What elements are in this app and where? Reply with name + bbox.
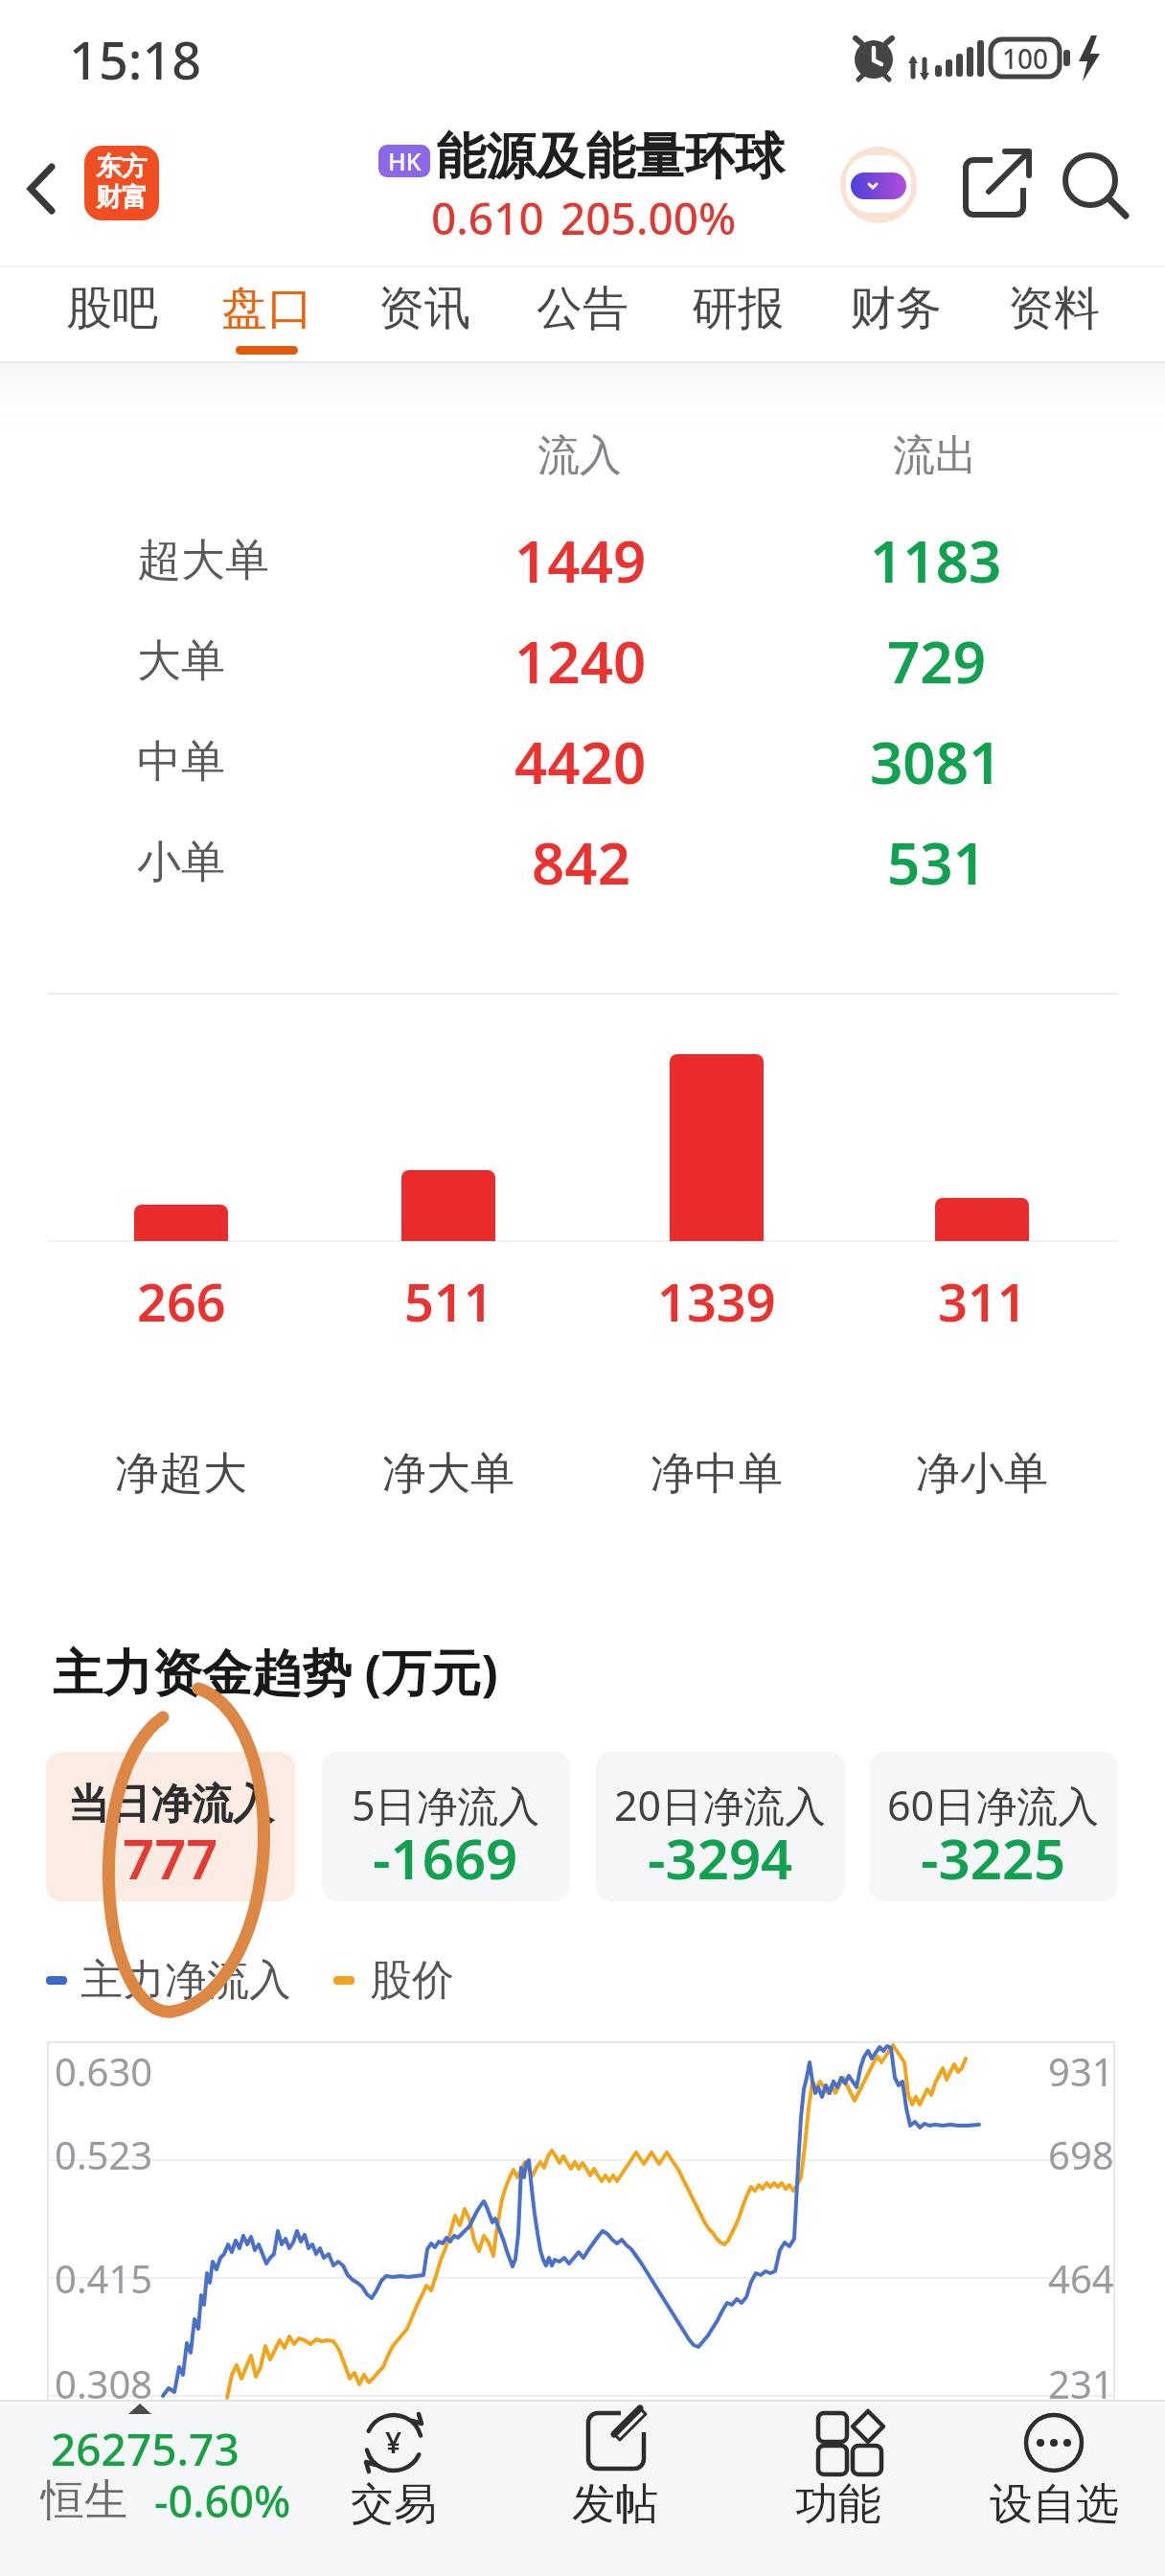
- staticText: 20日净流入: [614, 1777, 827, 1833]
- staticText: 777: [123, 1820, 218, 1896]
- staticText: 4420: [514, 723, 647, 801]
- staticText: 1449: [514, 521, 647, 600]
- staticText: 小单: [137, 835, 225, 890]
- staticText: 931: [1048, 2045, 1114, 2097]
- staticText: 设自选: [990, 2477, 1119, 2532]
- staticText: 股价: [370, 1954, 454, 2007]
- staticText: 大单: [137, 633, 225, 689]
- staticText: 531: [887, 823, 986, 902]
- staticText: 698: [1048, 2128, 1114, 2180]
- staticText: 464: [1048, 2252, 1114, 2304]
- staticText: 公告: [537, 280, 628, 337]
- staticText: HK: [388, 145, 422, 177]
- staticText: 1339: [657, 1266, 776, 1337]
- staticText: 资讯: [378, 280, 470, 337]
- staticText: 研报: [692, 280, 784, 337]
- staticText: 1183: [870, 521, 1002, 600]
- staticText: 资料: [1008, 280, 1100, 337]
- staticText: 恒生: [41, 2473, 127, 2528]
- staticText: ¥: [385, 2423, 402, 2462]
- staticText: 功能: [795, 2477, 881, 2532]
- staticText: 60日净流入: [887, 1777, 1100, 1833]
- staticText: 净大单: [382, 1446, 514, 1502]
- staticText: 主力净流入: [80, 1954, 291, 2007]
- staticText: 729: [887, 622, 986, 701]
- staticText: 净中单: [651, 1446, 783, 1502]
- staticText: 1240: [514, 622, 647, 701]
- staticText: 231: [1048, 2357, 1114, 2409]
- staticText: 净小单: [916, 1446, 1048, 1502]
- staticText: 5日净流入: [352, 1777, 540, 1833]
- staticText: 3081: [870, 723, 1002, 801]
- staticText: 205.00%: [560, 188, 737, 248]
- staticText: 0.630: [55, 2045, 153, 2097]
- staticText: 0.610: [431, 188, 544, 248]
- staticText: 266: [137, 1266, 226, 1337]
- staticText: 中单: [137, 734, 225, 790]
- staticText: 财富: [96, 181, 148, 214]
- staticText: 流出: [893, 429, 977, 482]
- staticText: -3225: [921, 1820, 1066, 1896]
- staticText: 主力资金趋势 (万元): [53, 1637, 498, 1705]
- staticText: 交易: [351, 2477, 437, 2532]
- staticText: 东方: [96, 150, 148, 183]
- staticText: 0.308: [55, 2357, 153, 2409]
- staticText: 超大单: [137, 533, 269, 588]
- staticText: 发帖: [572, 2477, 658, 2532]
- staticText: 311: [938, 1266, 1027, 1337]
- staticText: 财务: [850, 280, 942, 337]
- staticText: 100: [1002, 40, 1049, 77]
- staticText: 盘口: [221, 280, 313, 337]
- staticText: 15:18: [69, 24, 202, 95]
- staticText: 能源及能量环球: [436, 126, 785, 189]
- staticText: 0.523: [55, 2128, 153, 2180]
- staticText: 当日净流入: [68, 1779, 274, 1830]
- staticText: 511: [404, 1266, 493, 1337]
- staticText: 股吧: [66, 280, 158, 337]
- staticText: -0.60%: [154, 2472, 291, 2530]
- staticText: -1669: [373, 1820, 518, 1896]
- staticText: 0.415: [55, 2252, 153, 2304]
- staticText: 流入: [537, 429, 622, 482]
- staticText: 842: [532, 823, 630, 902]
- staticText: 26275.73: [51, 2419, 240, 2479]
- staticText: -3294: [648, 1820, 793, 1896]
- staticText: 净超大: [115, 1446, 247, 1502]
